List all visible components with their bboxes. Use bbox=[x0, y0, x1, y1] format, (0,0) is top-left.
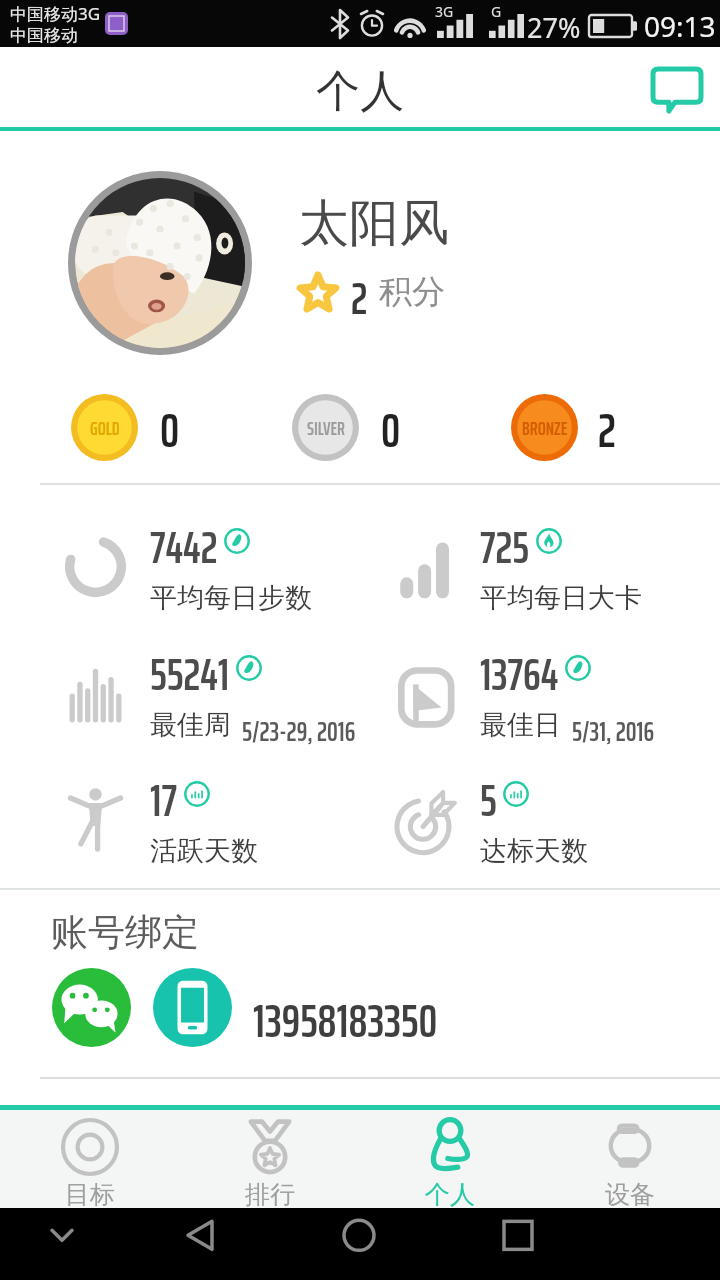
staticText: BRONZE bbox=[522, 413, 568, 443]
staticText: 个人 bbox=[316, 64, 404, 119]
staticText: 55241 bbox=[150, 639, 230, 710]
staticText: 排行 bbox=[245, 1179, 295, 1208]
staticText: 5/23-29, 2016 bbox=[242, 710, 356, 752]
staticText: 平均每日步数 bbox=[150, 581, 312, 615]
staticText: GOLD bbox=[90, 413, 120, 443]
staticText: G bbox=[491, 2, 502, 21]
button[interactable] bbox=[68, 171, 252, 355]
staticText: 中国移动 bbox=[10, 25, 78, 46]
staticText: 2 bbox=[598, 393, 616, 469]
button[interactable]: SILVER bbox=[292, 394, 359, 461]
button[interactable]: 目标 bbox=[0, 1110, 180, 1208]
staticText: 0 bbox=[160, 393, 180, 469]
button[interactable]: 个人 bbox=[360, 1110, 540, 1208]
button[interactable]: 2 bbox=[298, 264, 445, 320]
button[interactable]: 5 bbox=[396, 756, 716, 868]
staticText: 平均每日大卡 bbox=[480, 581, 642, 615]
button[interactable]: GOLD bbox=[71, 394, 138, 461]
button[interactable]: WeChat bbox=[52, 968, 131, 1047]
staticText: 27% bbox=[527, 9, 581, 46]
button[interactable]: Messages bbox=[644, 62, 710, 118]
staticText: 2 bbox=[351, 264, 368, 320]
staticText: 09:13 bbox=[644, 7, 716, 45]
staticText: 太阳风 bbox=[299, 192, 449, 255]
staticText: 目标 bbox=[65, 1179, 115, 1208]
staticText: 0 bbox=[381, 393, 401, 469]
staticText: 7442 bbox=[150, 512, 218, 583]
staticText: 5 bbox=[480, 765, 497, 836]
staticText: 最佳周 bbox=[150, 708, 231, 742]
staticText: 中国移动3G bbox=[10, 2, 101, 25]
staticText: 3G bbox=[435, 2, 454, 21]
button[interactable]: 排行 bbox=[180, 1110, 360, 1208]
button[interactable]: BRONZE bbox=[511, 394, 578, 461]
staticText: 725 bbox=[480, 512, 530, 583]
staticText: 设备 bbox=[605, 1179, 655, 1208]
staticText: SILVER bbox=[307, 413, 345, 443]
staticText: 账号绑定 bbox=[51, 909, 199, 956]
staticText: 13958183350 bbox=[253, 984, 438, 1058]
staticText: 个人 bbox=[425, 1179, 475, 1208]
button[interactable]: 55241 bbox=[63, 630, 383, 742]
button[interactable]: 7442 bbox=[63, 503, 383, 615]
button[interactable]: 725 bbox=[396, 503, 716, 615]
staticText: 17 bbox=[150, 765, 178, 836]
staticText: 活跃天数 bbox=[150, 834, 258, 868]
button[interactable]: 设备 bbox=[540, 1110, 720, 1208]
button[interactable]: 17 bbox=[63, 756, 383, 868]
staticText: 13764 bbox=[480, 639, 559, 710]
button[interactable]: Phone bbox=[153, 968, 232, 1047]
staticText: 达标天数 bbox=[480, 834, 588, 868]
staticText: 积分 bbox=[379, 271, 445, 313]
button[interactable]: 13764 bbox=[396, 630, 716, 742]
staticText: 最佳日 bbox=[480, 708, 561, 742]
staticText: 5/31, 2016 bbox=[572, 710, 655, 752]
